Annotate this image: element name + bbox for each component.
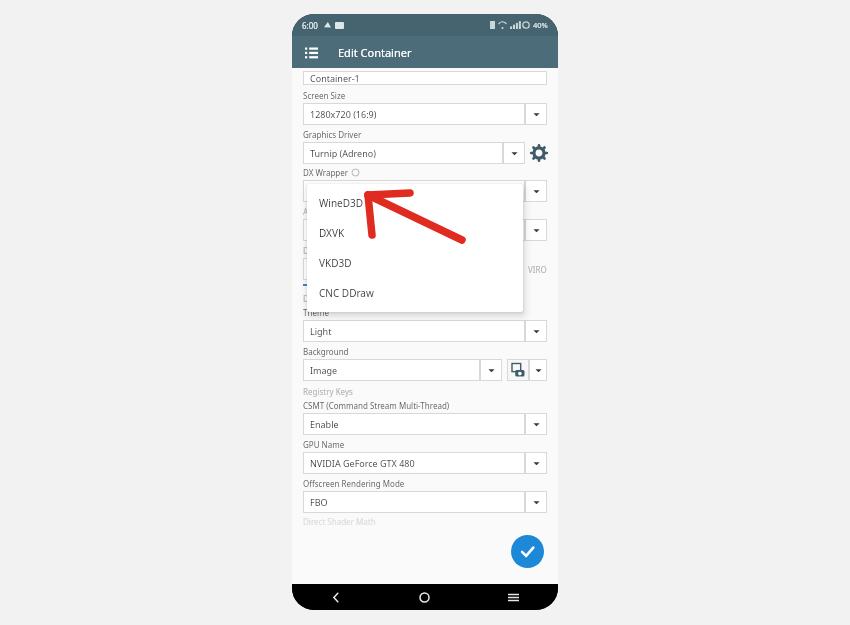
- staticText: Container-1: [310, 72, 360, 84]
- staticText: Offscreen Rendering Mode: [303, 478, 405, 489]
- button[interactable]: Turnip (Adreno): [303, 142, 503, 164]
- staticText: VKD3D: [319, 256, 352, 270]
- button[interactable]: Open Enable dropdown: [525, 413, 547, 435]
- button[interactable]: Open Image dropdown: [480, 359, 502, 381]
- button[interactable]: Light: [303, 320, 525, 342]
- button[interactable]: FBO: [303, 491, 525, 513]
- button[interactable]: Open Turnip (Adreno) dropdown: [503, 142, 525, 164]
- button[interactable]: Open dropdown: [525, 180, 547, 202]
- button[interactable]: WineD3D: [307, 188, 523, 218]
- button[interactable]: CNC DDraw: [307, 278, 523, 308]
- staticText: FBO: [310, 496, 328, 508]
- staticText: NVIDIA GeForce GTX 480: [310, 457, 415, 469]
- button[interactable]: Pick background image: [507, 359, 529, 381]
- staticText: Edit Container: [338, 45, 412, 60]
- staticText: VIRO: [528, 264, 547, 275]
- button[interactable]: Open NVIDIA GeForce GTX 480 dropdown: [525, 452, 547, 474]
- button[interactable]: Home: [380, 584, 469, 610]
- button[interactable]: Back: [292, 584, 380, 610]
- staticText: GPU Name: [303, 439, 345, 450]
- button[interactable]: Background options: [529, 359, 547, 381]
- button[interactable]: VKD3D: [307, 248, 523, 278]
- button[interactable]: Menu: [299, 40, 323, 64]
- button[interactable]: Open dropdown: [525, 219, 547, 241]
- button[interactable]: Confirm: [511, 535, 544, 568]
- button[interactable]: Driver settings: [531, 145, 547, 161]
- button[interactable]: Open Light dropdown: [525, 320, 547, 342]
- staticText: D: [303, 245, 309, 256]
- staticText: Graphics Driver: [303, 129, 362, 140]
- staticText: Screen Size: [303, 90, 346, 101]
- staticText: Desktop: [303, 293, 335, 304]
- staticText: Image: [310, 364, 338, 376]
- button[interactable]: 1280x720 (16:9): [303, 103, 525, 125]
- button[interactable]: [303, 219, 525, 241]
- button[interactable]: Open FBO dropdown: [525, 491, 547, 513]
- staticText: Enable: [310, 418, 339, 430]
- button[interactable]: DXVK: [307, 218, 523, 248]
- staticText: Direct Shader Math: [303, 516, 376, 527]
- staticText: 1280x720 (16:9): [310, 108, 377, 120]
- staticText: WineD3D: [319, 196, 364, 210]
- staticText: Theme: [303, 307, 329, 318]
- staticText: DX Wrapper: [303, 167, 349, 178]
- button[interactable]: NVIDIA GeForce GTX 480: [303, 452, 525, 474]
- button[interactable]: Recents: [469, 584, 558, 610]
- staticText: Turnip (Adreno): [310, 147, 376, 159]
- staticText: Registry Keys: [303, 386, 353, 397]
- button[interactable]: Enable: [303, 413, 525, 435]
- staticText: Background: [303, 346, 349, 357]
- staticText: A: [303, 206, 309, 217]
- button[interactable]: [303, 180, 525, 202]
- staticText: 6:00: [302, 20, 318, 31]
- button[interactable]: [303, 258, 493, 280]
- staticText: Light: [310, 325, 332, 337]
- staticText: CSMT (Command Stream Multi-Thread): [303, 400, 450, 411]
- staticText: 40%: [533, 20, 548, 30]
- staticText: DXVK: [319, 226, 345, 240]
- button[interactable]: Container-1: [303, 71, 547, 85]
- button[interactable]: Image: [303, 359, 480, 381]
- button[interactable]: Open 1280x720 (16:9) dropdown: [525, 103, 547, 125]
- staticText: CNC DDraw: [319, 286, 374, 300]
- button[interactable]: [303, 284, 420, 286]
